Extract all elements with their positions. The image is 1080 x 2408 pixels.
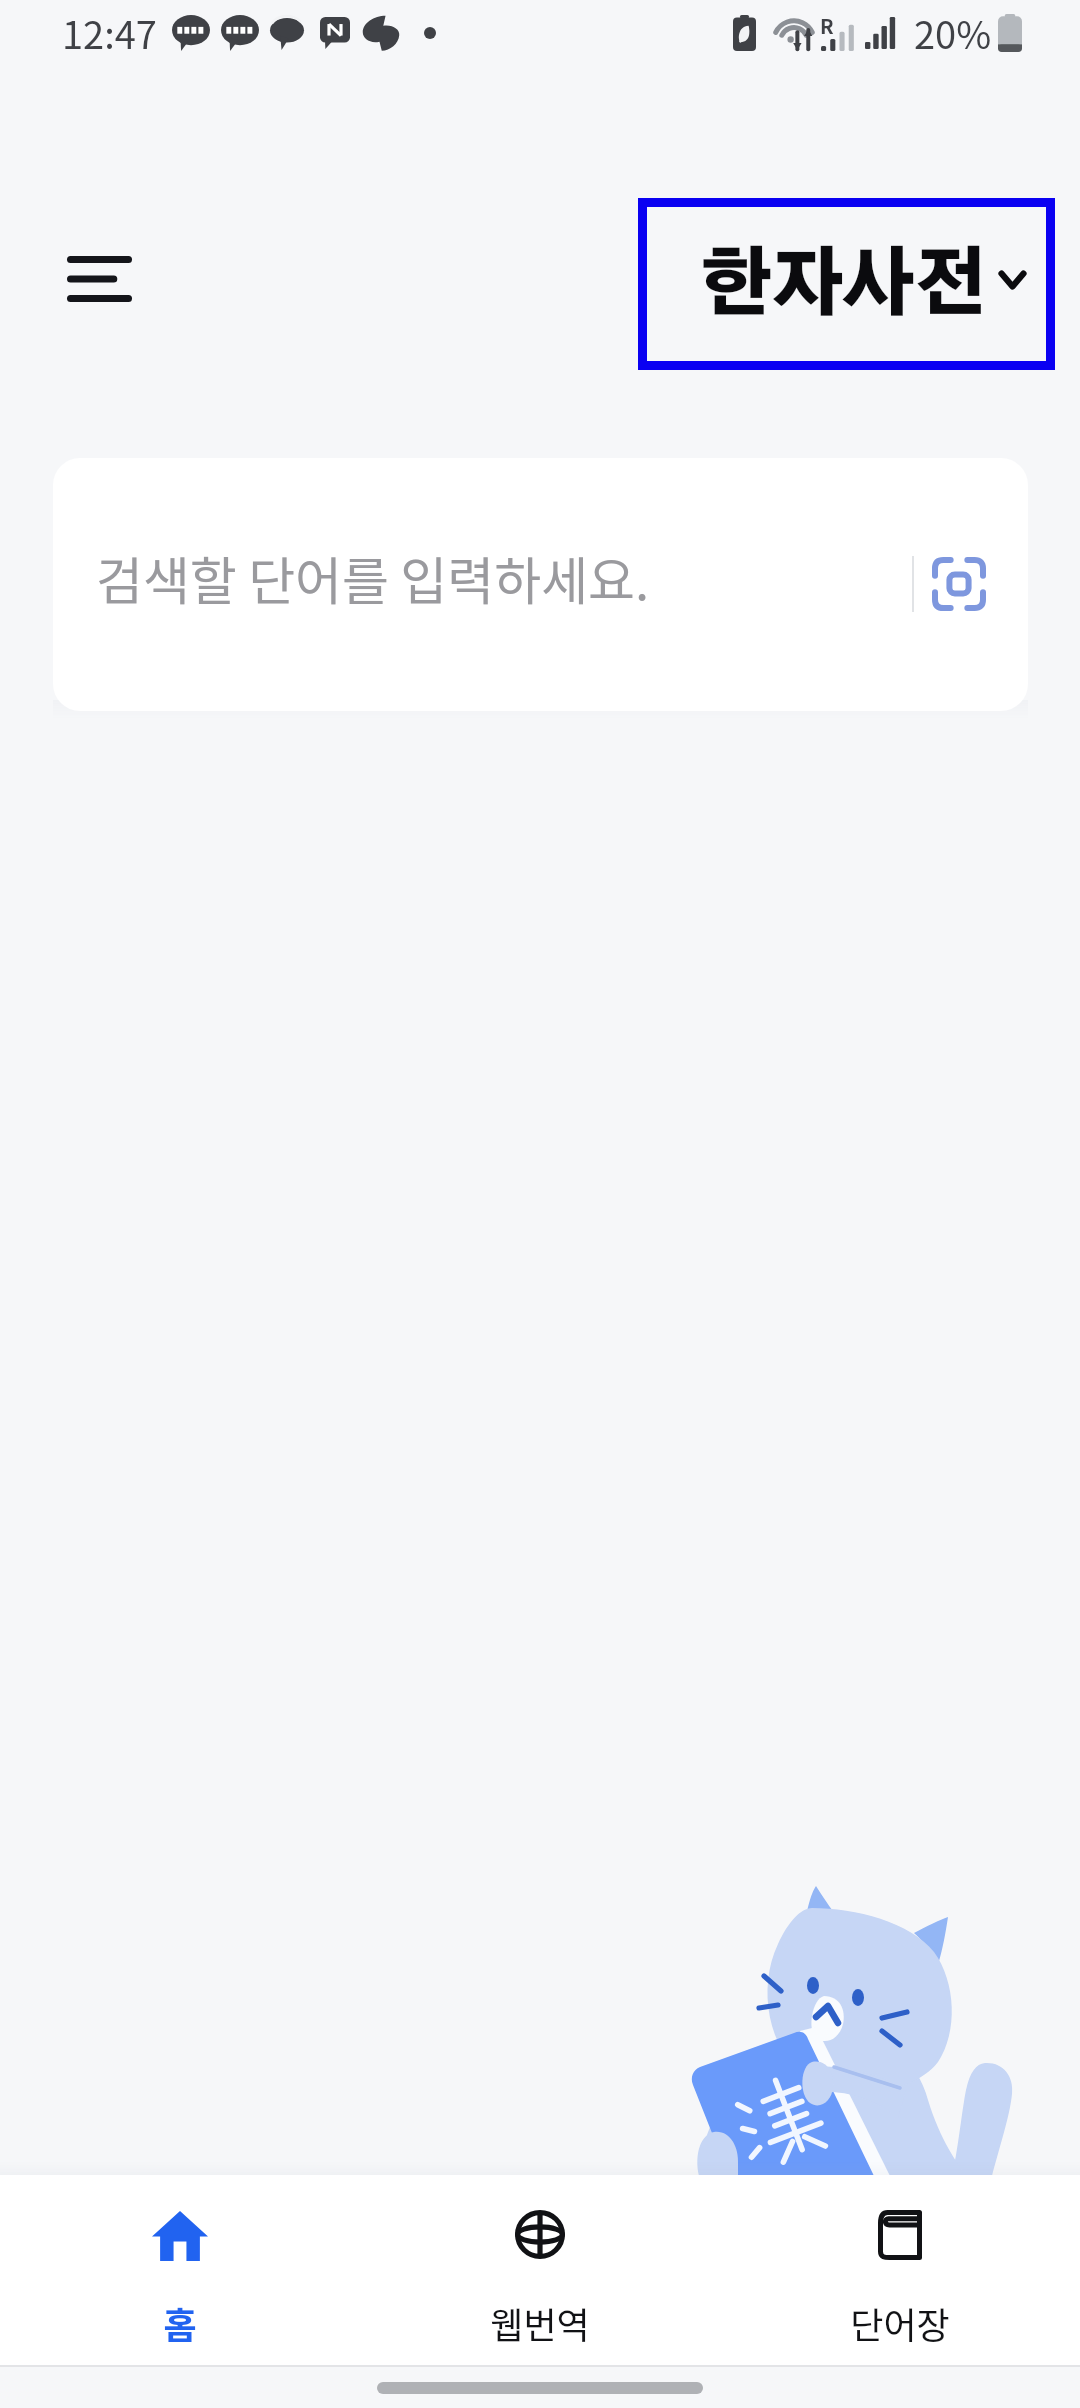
button[interactable]: Menu xyxy=(27,216,172,342)
button[interactable]: 웹번역 xyxy=(360,2175,720,2365)
button[interactable]: 검색할 단어를 입력하세요. xyxy=(53,458,1028,711)
staticText: 웹번역 xyxy=(490,2297,590,2349)
staticText: 한자사전 xyxy=(699,251,985,324)
staticText: 12:47 xyxy=(62,5,157,60)
staticText: 검색할 단어를 입력하세요. xyxy=(96,541,650,615)
staticText: 20% xyxy=(914,5,992,60)
button[interactable]: 홈 xyxy=(0,2175,360,2365)
staticText: 단어장 xyxy=(850,2297,950,2349)
button[interactable]: 한자사전 xyxy=(647,207,1046,361)
button[interactable]: Scan text xyxy=(914,539,1004,629)
staticText: R xyxy=(820,11,834,40)
staticText: 홈 xyxy=(163,2297,197,2349)
button[interactable]: 단어장 xyxy=(720,2175,1080,2365)
